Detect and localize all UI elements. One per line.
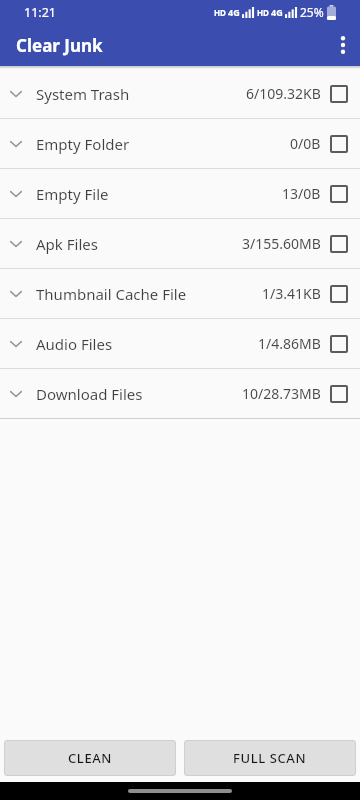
button[interactable]: [330, 85, 348, 103]
staticText: 13/0B: [282, 184, 321, 203]
button[interactable]: [330, 185, 348, 203]
staticText: 11:21: [24, 4, 56, 21]
staticText: 25%: [300, 4, 324, 20]
button[interactable]: Audio Files: [0, 319, 360, 369]
staticText: Empty File: [36, 184, 109, 204]
staticText: FULL SCAN: [233, 749, 307, 767]
button[interactable]: Empty Folder: [0, 119, 360, 169]
button[interactable]: [330, 385, 348, 403]
button[interactable]: FULL SCAN: [184, 740, 356, 776]
button[interactable]: [330, 235, 348, 253]
staticText: Clear Junk: [16, 34, 103, 57]
staticText: Download Files: [36, 384, 143, 404]
staticText: Audio Files: [36, 334, 113, 354]
staticText: 0/0B: [290, 134, 321, 153]
staticText: System Trash: [36, 84, 130, 104]
staticText: Thumbnail Cache File: [36, 284, 187, 304]
staticText: HD: [257, 7, 269, 18]
staticText: Apk Files: [36, 234, 98, 254]
button[interactable]: [330, 335, 348, 353]
button[interactable]: Apk Files: [0, 219, 360, 269]
staticText: 1/3.41KB: [262, 284, 321, 303]
button[interactable]: Thumbnail Cache File: [0, 269, 360, 319]
staticText: 1/4.86MB: [258, 334, 321, 353]
staticText: CLEAN: [68, 749, 113, 767]
button[interactable]: [330, 135, 348, 153]
staticText: 10/28.73MB: [242, 384, 321, 403]
staticText: HD: [214, 7, 226, 18]
staticText: Empty Folder: [36, 134, 130, 154]
button[interactable]: CLEAN: [4, 740, 176, 776]
staticText: 3/155.60MB: [242, 234, 321, 253]
button[interactable]: Empty File: [0, 169, 360, 219]
button[interactable]: System Trash: [0, 69, 360, 119]
button[interactable]: [330, 285, 348, 303]
button[interactable]: [326, 28, 360, 62]
staticText: 4G: [271, 6, 283, 18]
button[interactable]: Download Files: [0, 369, 360, 419]
staticText: 6/109.32KB: [246, 84, 321, 103]
staticText: 4G: [228, 6, 240, 18]
